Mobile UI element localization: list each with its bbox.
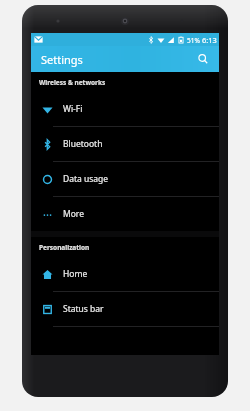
button[interactable]: Data usage [31, 162, 219, 196]
staticText: Wireless & networks [39, 78, 106, 87]
staticText: Home [63, 268, 88, 280]
staticText: 6:13 [202, 35, 217, 45]
staticText: Wi-Fi [63, 103, 83, 115]
staticText: Settings [41, 52, 83, 67]
staticText: Personalization [39, 243, 90, 252]
staticText: Status bar [63, 303, 104, 315]
button[interactable]: Search [193, 49, 213, 69]
button[interactable]: Home [31, 257, 219, 291]
button[interactable]: Bluetooth [31, 127, 219, 161]
button[interactable]: More [31, 197, 219, 231]
button[interactable]: Status bar [31, 292, 219, 326]
staticText: Bluetooth [63, 138, 103, 150]
button[interactable]: Wi-Fi [31, 92, 219, 126]
staticText: 51% [187, 36, 200, 45]
staticText: Data usage [63, 173, 109, 185]
staticText: More [63, 208, 84, 220]
